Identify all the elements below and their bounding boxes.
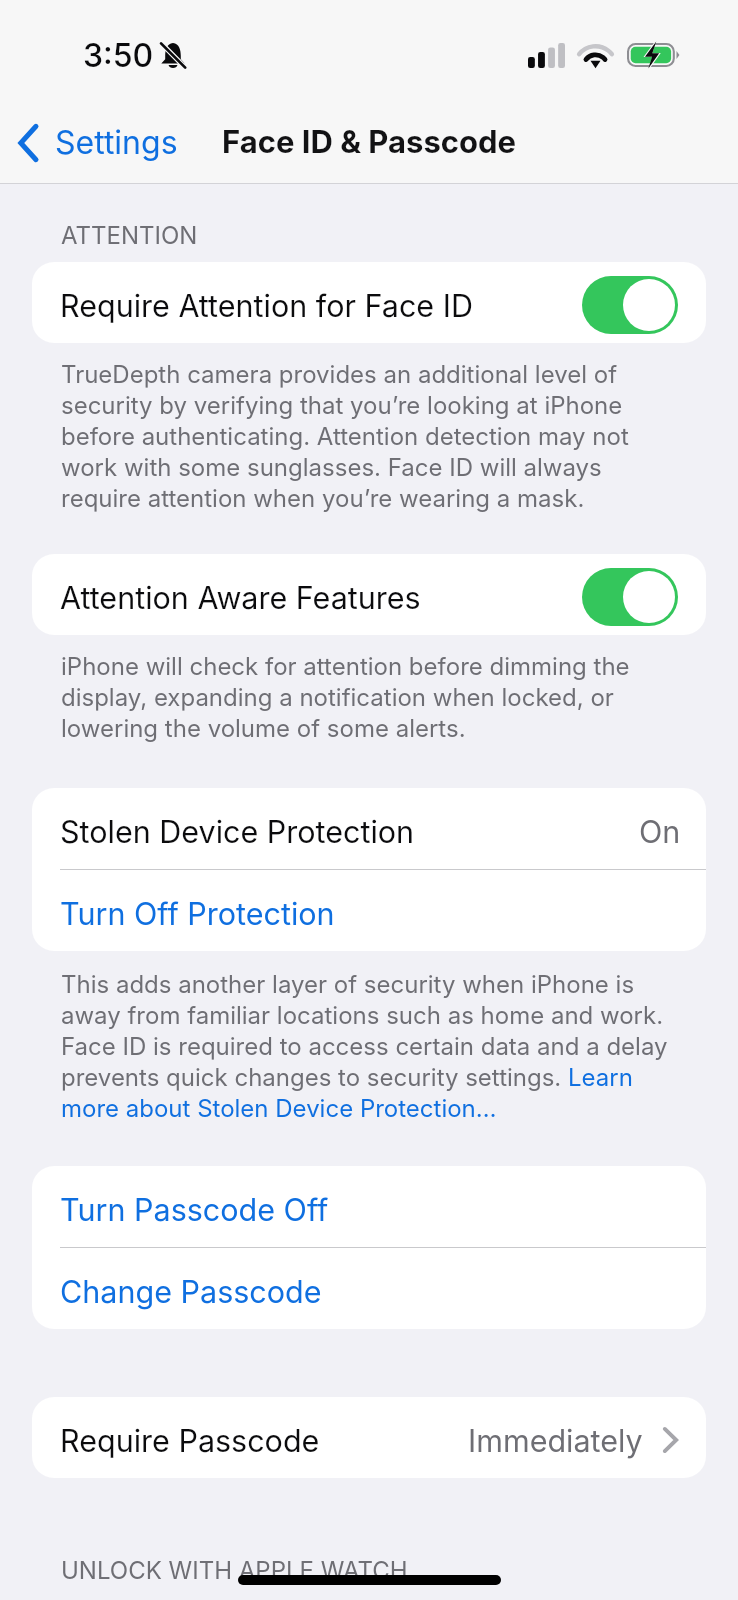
staticText: Turn Off Protection [60, 895, 335, 932]
staticText: Immediately [468, 1422, 643, 1459]
staticText: Attention Aware Features [60, 579, 421, 616]
staticText: UNLOCK WITH APPLE WATCH [61, 1556, 408, 1585]
button[interactable]: Require Attention for Face ID [32, 262, 706, 343]
button[interactable]: Turn Off Protection [32, 870, 706, 951]
staticText: Face ID & Passcode [222, 123, 517, 161]
button[interactable]: Require Passcode [32, 1397, 706, 1478]
staticText: Settings [55, 123, 178, 162]
button[interactable]: Back [0, 106, 192, 171]
button[interactable]: On [582, 276, 678, 334]
staticText: Require Attention for Face ID [60, 287, 473, 324]
staticText: ATTENTION [61, 221, 198, 250]
button[interactable]: Attention Aware Features [32, 554, 706, 635]
button[interactable]: Change Passcode [32, 1248, 706, 1329]
button[interactable]: Stolen Device Protection [32, 788, 706, 869]
staticText: iPhone will check for attention before d… [61, 651, 676, 744]
staticText: This adds another layer of security when… [61, 969, 676, 1124]
staticText: Turn Passcode Off [60, 1191, 329, 1228]
staticText: On [639, 813, 681, 850]
staticText: TrueDepth camera provides an additional … [61, 359, 676, 514]
staticText: Require Passcode [60, 1422, 320, 1459]
button[interactable]: Turn Passcode Off [32, 1166, 706, 1247]
staticText: Change Passcode [60, 1273, 322, 1310]
staticText: 3:50 [83, 36, 154, 75]
other: Back [18, 124, 38, 162]
button[interactable]: On [582, 568, 678, 626]
staticText: Stolen Device Protection [60, 813, 415, 850]
